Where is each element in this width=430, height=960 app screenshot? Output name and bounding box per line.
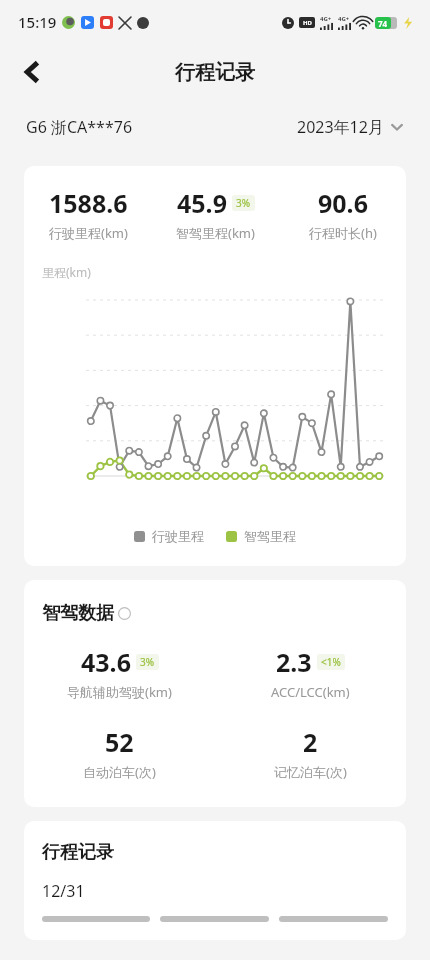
staticText: HD (303, 19, 312, 27)
staticText: 2.3 (276, 645, 312, 679)
button[interactable] (42, 916, 388, 922)
button[interactable]: 2023年12月 (297, 116, 404, 138)
staticText: 90.6 (318, 186, 368, 220)
button[interactable]: 2.3 (215, 645, 406, 701)
staticText: 行程时长(h) (309, 224, 377, 242)
staticText: 43.6 (81, 645, 131, 679)
staticText: 1588.6 (49, 186, 128, 220)
staticText: 4G+ (320, 15, 332, 23)
staticText: 15:19 (18, 12, 57, 32)
staticText: 12/31 (42, 880, 85, 902)
button[interactable]: 智驾数据 (42, 602, 131, 625)
button[interactable]: 1588.6 (24, 186, 152, 242)
staticText: 智驾里程 (244, 528, 296, 544)
staticText: 行程记录 (175, 60, 255, 85)
button[interactable]: 2 (215, 725, 406, 781)
staticText: 行驶里程 (152, 528, 204, 544)
staticText: 4G+ (338, 15, 350, 23)
staticText: 3% (140, 655, 155, 669)
staticText: 行程记录 (42, 841, 114, 864)
staticText: 行驶里程(km) (49, 224, 128, 242)
button[interactable]: Back (8, 48, 56, 96)
staticText: G6 浙CA***76 (26, 116, 133, 138)
staticText: 智驾数据 (42, 602, 114, 625)
staticText: 3% (236, 196, 251, 210)
staticText: 自动泊车(次) (83, 763, 156, 781)
other: Info (118, 607, 131, 620)
staticText: <1% (321, 655, 341, 669)
staticText: 2023年12月 (297, 116, 384, 138)
staticText: 52 (105, 725, 134, 759)
staticText: 记忆泊车(次) (274, 763, 347, 781)
staticText: 45.9 (177, 186, 227, 220)
button[interactable]: 45.9 (152, 186, 279, 242)
button[interactable]: 52 (24, 725, 215, 781)
staticText: 里程(km) (42, 264, 91, 280)
button[interactable]: 43.6 (24, 645, 215, 701)
staticText: ACC/LCC(km) (271, 683, 350, 701)
staticText: 智驾里程(km) (176, 224, 255, 242)
staticText: 导航辅助驾驶(km) (67, 683, 172, 701)
staticText: 74 (378, 18, 388, 29)
button[interactable]: 90.6 (279, 186, 406, 242)
staticText: 2 (303, 725, 318, 759)
